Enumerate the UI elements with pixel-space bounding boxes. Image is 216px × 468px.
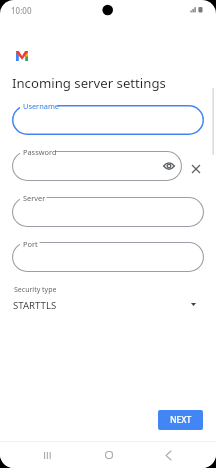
button[interactable]: Show password: [12, 151, 182, 181]
button[interactable]: Clear: [185, 154, 207, 184]
staticText: Password: [23, 147, 57, 157]
staticText: Server: [23, 193, 46, 203]
button[interactable]: Recent apps: [33, 445, 61, 465]
button[interactable]: Show password: [162, 159, 176, 173]
staticText: Username: [23, 101, 59, 111]
button[interactable]: Home: [95, 445, 123, 465]
button[interactable]: Back: [154, 445, 182, 465]
staticText: Port: [23, 239, 38, 249]
button[interactable]: [12, 197, 204, 227]
staticText: Security type: [14, 285, 57, 295]
button[interactable]: [12, 105, 204, 135]
staticText: STARTTLS: [13, 299, 57, 312]
button[interactable]: [12, 242, 204, 272]
staticText: Incoming server settings: [12, 74, 166, 92]
button[interactable]: NEXT: [158, 410, 203, 430]
button[interactable]: Security type: [0, 282, 216, 316]
staticText: 10:00: [11, 5, 32, 16]
staticText: NEXT: [170, 414, 192, 426]
